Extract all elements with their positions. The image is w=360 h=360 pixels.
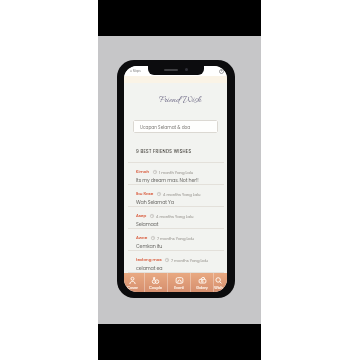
staticText: Asep (136, 213, 147, 219)
staticText: Couple (149, 285, 162, 290)
staticText: Wish (214, 285, 223, 290)
button[interactable]: Kimah (124, 163, 227, 184)
staticText: 4 months Yang Lalu (156, 214, 194, 219)
button[interactable] (155, 276, 203, 290)
staticText: textong mas (136, 257, 162, 263)
staticText: Its my dream mas. Not her!! (136, 177, 199, 184)
staticText: 9 BEST FRIENDS WISHES (136, 148, 192, 154)
button[interactable]: Cover (124, 273, 144, 292)
staticText: 4 months Yang Lalu (163, 192, 201, 197)
button[interactable]: textong mas (124, 251, 227, 272)
button[interactable]: Galery (190, 273, 213, 292)
staticText: Awoe (136, 235, 148, 241)
staticText: 1 month Yang Lalu (159, 170, 194, 175)
button[interactable]: Couple (144, 273, 167, 292)
staticText: Cover (127, 285, 138, 290)
staticText: 7 months Yang Lalu (157, 236, 195, 241)
staticText: 7 months Yang Lalu (171, 258, 209, 263)
button[interactable]: Awoe (124, 229, 227, 250)
button[interactable]: Asep (124, 207, 227, 228)
staticText: Ibu Rose (136, 191, 154, 197)
staticText: Event (174, 285, 184, 290)
staticText: Ucapan Selamat & doa (140, 124, 191, 130)
staticText: Wah Selamat Ya (136, 199, 174, 206)
staticText: celamat ea (136, 265, 163, 272)
button[interactable]: Event (167, 273, 190, 292)
staticText: Cemkan itu (136, 243, 163, 250)
staticText: Galery (196, 285, 208, 290)
button[interactable]: Wish (213, 273, 224, 292)
staticText: Kimah (136, 169, 150, 175)
button[interactable]: Ibu Rose (124, 185, 227, 206)
staticText: Friend Wish (159, 94, 202, 106)
staticText: Maps (133, 69, 141, 73)
button[interactable]: Ucapan Selamat & doa (133, 120, 218, 133)
staticText: Selamaat (136, 221, 159, 228)
